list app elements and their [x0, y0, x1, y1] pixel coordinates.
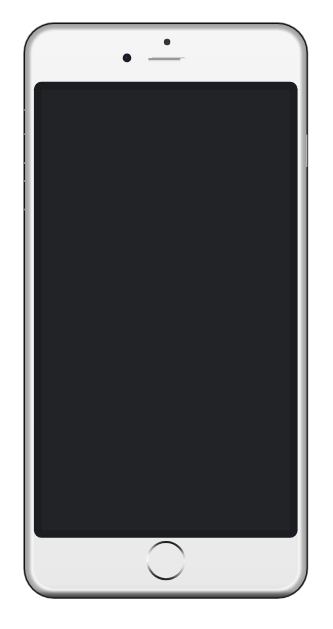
button[interactable]: Home	[146, 541, 186, 581]
button[interactable]: Volume down	[22, 194, 28, 212]
button[interactable]: Volume up	[22, 162, 28, 182]
button[interactable]: Phone screen	[34, 82, 298, 538]
button[interactable]: Power	[304, 135, 310, 168]
